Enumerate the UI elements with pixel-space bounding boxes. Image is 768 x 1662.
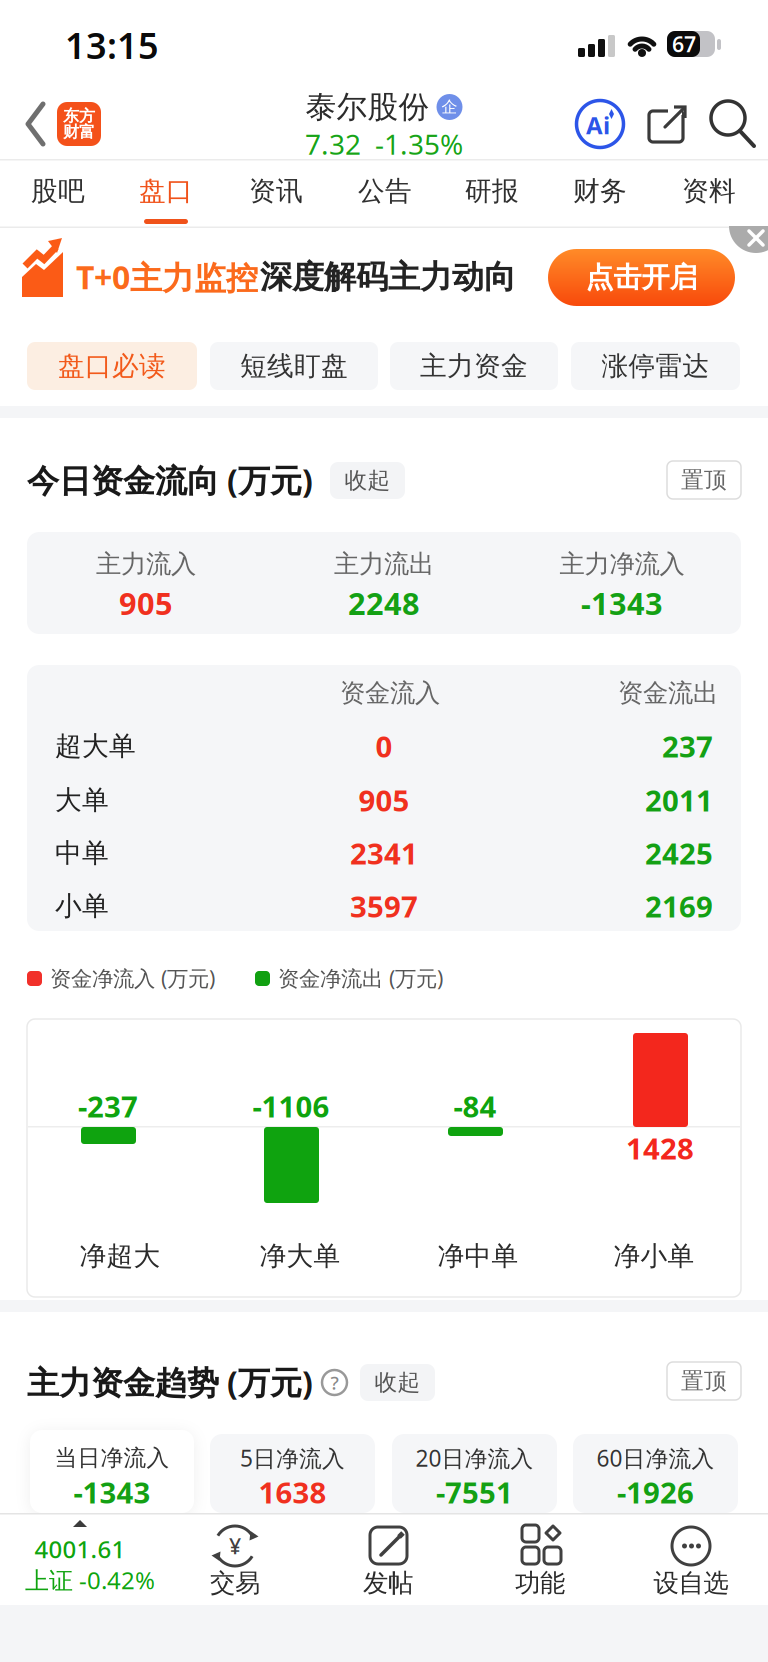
- staticText: 小单: [55, 890, 109, 922]
- button[interactable]: 置顶: [667, 1362, 741, 1400]
- button[interactable]: 搜索: [711, 100, 759, 150]
- button[interactable]: 交易: [180, 1516, 290, 1602]
- button[interactable]: 返回: [26, 102, 46, 146]
- staticText: 深度解码主力动向: [260, 257, 516, 297]
- button[interactable]: 当日净流入: [30, 1430, 194, 1513]
- staticText: -1106: [252, 1086, 329, 1125]
- staticText: 3597: [350, 886, 418, 925]
- button[interactable]: 涨停雷达: [571, 342, 740, 390]
- staticText: 0: [375, 726, 392, 765]
- button[interactable]: 置顶: [667, 461, 741, 499]
- staticText: 发帖: [363, 1567, 413, 1598]
- button[interactable]: 公告: [337, 162, 433, 220]
- button[interactable]: 关闭: [726, 197, 768, 255]
- button[interactable]: 发帖: [333, 1516, 443, 1602]
- staticText: -7551: [436, 1472, 513, 1511]
- staticText: 当日净流入: [54, 1444, 169, 1472]
- staticText: 资金流入: [340, 677, 440, 708]
- staticText: 资金流出: [618, 677, 718, 708]
- button[interactable]: 研报: [444, 162, 540, 220]
- button[interactable]: 4001.61: [0, 1516, 180, 1602]
- button[interactable]: Ai 助手: [576, 100, 624, 148]
- staticText: 今日资金流向 (万元): [27, 459, 313, 501]
- staticText: 泰尔股份: [305, 88, 429, 126]
- staticText: 置顶: [681, 466, 727, 494]
- button[interactable]: 短线盯盘: [210, 342, 378, 390]
- button[interactable]: 主力资金: [390, 342, 558, 390]
- staticText: 收起: [374, 1369, 420, 1396]
- staticText: 中单: [55, 837, 109, 869]
- button[interactable]: 股吧: [10, 162, 106, 220]
- staticText: 20日净流入: [415, 1443, 533, 1473]
- staticText: 资讯: [249, 175, 303, 207]
- staticText: 净小单: [613, 1240, 694, 1272]
- staticText: -237: [78, 1086, 138, 1125]
- staticText: 60日净流入: [596, 1443, 714, 1473]
- staticText: -1343: [581, 583, 663, 623]
- staticText: 主力净流入: [559, 548, 684, 579]
- staticText: 资料: [682, 175, 736, 207]
- staticText: -1926: [617, 1472, 694, 1511]
- staticText: 短线盯盘: [240, 350, 348, 382]
- staticText: 收起: [344, 467, 390, 494]
- staticText: ¥: [229, 1532, 241, 1560]
- staticText: 财务: [573, 175, 627, 207]
- staticText: 2169: [645, 886, 713, 925]
- button[interactable]: 盘口必读: [27, 342, 197, 390]
- button[interactable]: 盘口: [118, 162, 214, 220]
- staticText: 2248: [348, 583, 420, 623]
- staticText: 股吧: [31, 175, 85, 207]
- button[interactable]: 分享: [648, 105, 688, 143]
- staticText: 67: [672, 30, 696, 58]
- staticText: 1638: [258, 1472, 326, 1511]
- staticText: 主力资金: [420, 350, 528, 382]
- staticText: 主力资金趋势 (万元): [27, 1361, 313, 1403]
- staticText: 资金净流出 (万元): [278, 964, 443, 992]
- staticText: 2011: [645, 780, 713, 819]
- button[interactable]: 资讯: [228, 162, 324, 220]
- staticText: Ai: [586, 109, 610, 141]
- button[interactable]: 20日净流入: [392, 1434, 557, 1513]
- staticText: 905: [358, 780, 409, 819]
- button[interactable]: 收起: [360, 1364, 435, 1401]
- button[interactable]: 说明: [322, 1370, 347, 1395]
- staticText: T+0主力监控: [76, 256, 258, 298]
- staticText: 置顶: [681, 1367, 727, 1395]
- staticText: 净超大: [79, 1240, 160, 1272]
- staticText: ?: [330, 1370, 338, 1395]
- button[interactable]: 功能: [485, 1516, 595, 1602]
- button[interactable]: 60日净流入: [573, 1434, 738, 1513]
- button[interactable]: 资料: [661, 162, 757, 220]
- button[interactable]: 5日净流入: [210, 1434, 375, 1513]
- staticText: 公告: [358, 175, 412, 207]
- staticText: 2425: [645, 833, 713, 872]
- staticText: 1428: [626, 1128, 694, 1167]
- staticText: 研报: [465, 175, 519, 207]
- staticText: 13:15: [65, 21, 159, 69]
- staticText: 企: [441, 97, 457, 117]
- staticText: 东方: [63, 106, 95, 126]
- staticText: 大单: [55, 784, 109, 816]
- staticText: 功能: [515, 1567, 565, 1598]
- button[interactable]: 收起: [330, 462, 405, 499]
- staticText: 净大单: [259, 1240, 340, 1272]
- staticText: 设自选: [653, 1567, 728, 1598]
- staticText: 财富: [63, 122, 95, 142]
- staticText: 交易: [210, 1567, 260, 1598]
- staticText: 2341: [350, 833, 418, 872]
- staticText: 237: [662, 726, 713, 765]
- button[interactable]: 点击开启: [548, 249, 735, 306]
- staticText: 主力流出: [334, 548, 434, 579]
- staticText: 905: [119, 583, 173, 623]
- staticText: 超大单: [55, 730, 136, 762]
- staticText: 资金净流入 (万元): [50, 964, 215, 992]
- staticText: 7.32 -1.35%: [305, 125, 463, 163]
- staticText: 主力流入: [96, 548, 196, 579]
- staticText: -1343: [73, 1472, 150, 1511]
- staticText: 涨停雷达: [601, 350, 709, 382]
- button[interactable]: 财务: [552, 162, 648, 220]
- staticText: 净中单: [437, 1240, 518, 1272]
- staticText: 上证 -0.42%: [25, 1564, 155, 1596]
- button[interactable]: 设自选: [631, 1516, 751, 1602]
- button[interactable]: 东方财富: [57, 102, 101, 146]
